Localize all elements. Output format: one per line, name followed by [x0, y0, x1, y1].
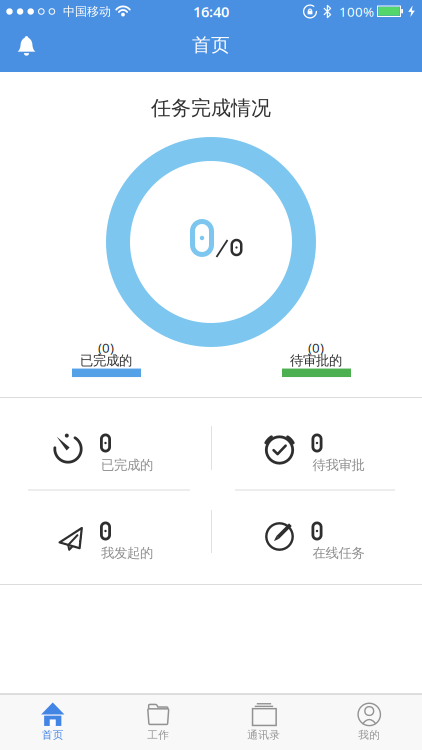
- button[interactable]: 通讯录: [211, 696, 316, 748]
- staticText: 任务完成情况: [151, 96, 271, 120]
- staticText: 待我审批: [312, 457, 364, 473]
- staticText: 16:40: [193, 2, 229, 21]
- button[interactable]: 我的: [317, 696, 422, 748]
- staticText: 在线任务: [312, 545, 364, 561]
- button[interactable]: 待我审批: [211, 402, 422, 494]
- staticText: 待审批的: [290, 352, 342, 369]
- staticText: 我发起的: [101, 545, 153, 561]
- staticText: (0): [308, 339, 324, 356]
- staticText: 工作: [147, 728, 169, 741]
- staticText: 100%: [339, 3, 374, 20]
- staticText: 首页: [42, 728, 64, 741]
- staticText: 已完成的: [101, 457, 153, 473]
- button[interactable]: 在线任务: [211, 490, 422, 582]
- staticText: (0): [98, 339, 114, 356]
- button[interactable]: 首页: [0, 696, 105, 748]
- staticText: 中国移动: [63, 4, 111, 19]
- button[interactable]: 已完成的: [0, 402, 211, 494]
- button[interactable]: 我发起的: [0, 490, 211, 582]
- button[interactable]: 通知: [6, 26, 46, 66]
- staticText: 我的: [358, 728, 380, 741]
- staticText: 首页: [192, 33, 230, 56]
- button[interactable]: 工作: [106, 696, 211, 748]
- staticText: 通讯录: [247, 728, 280, 741]
- staticText: 已完成的: [80, 352, 132, 369]
